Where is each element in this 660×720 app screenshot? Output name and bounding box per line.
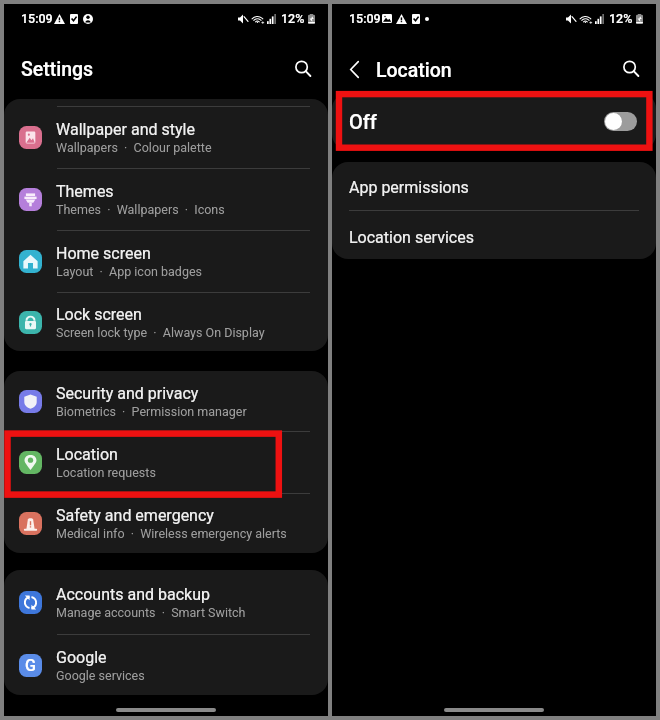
button[interactable]: Location services xyxy=(332,211,656,259)
staticText: Medical info · Wireless emergency alerts xyxy=(56,526,287,541)
staticText: Wallpapers · Colour palette xyxy=(56,140,212,155)
staticText: Themes xyxy=(56,182,114,201)
button[interactable]: Security and privacy xyxy=(4,371,328,431)
staticText: Wallpaper and style xyxy=(56,120,195,139)
staticText: Google xyxy=(56,648,107,667)
staticText: Safety and emergency xyxy=(56,506,214,525)
staticText: 12% xyxy=(281,11,305,26)
staticText: Home screen xyxy=(56,244,151,263)
button[interactable]: Search xyxy=(614,52,648,86)
staticText: Biometrics · Permission manager xyxy=(56,404,247,419)
staticText: Location requests xyxy=(56,465,156,480)
button[interactable]: G xyxy=(4,635,328,695)
button[interactable]: Off xyxy=(332,93,656,150)
staticText: Themes · Wallpapers · Icons xyxy=(56,202,225,217)
button[interactable]: Lock screen xyxy=(4,293,328,351)
button[interactable]: Home screen xyxy=(4,231,328,292)
staticText: Lock screen xyxy=(56,305,142,324)
staticText: App permissions xyxy=(349,178,469,197)
staticText: Layout · App icon badges xyxy=(56,264,203,279)
staticText: Off xyxy=(349,110,377,133)
staticText: 12% xyxy=(609,11,633,26)
button[interactable]: Safety and emergency xyxy=(4,494,328,553)
staticText: 15:09 xyxy=(349,11,381,26)
staticText: Security and privacy xyxy=(56,384,199,403)
staticText: Location services xyxy=(349,228,474,247)
button[interactable]: Location xyxy=(4,432,328,493)
staticText: Location xyxy=(376,59,452,82)
staticText: Location xyxy=(56,445,118,464)
button[interactable]: Back xyxy=(339,54,369,84)
button[interactable]: Wallpaper and style xyxy=(4,107,328,168)
staticText: G xyxy=(25,656,36,675)
staticText: 15:09 xyxy=(21,11,53,26)
button[interactable]: Location off toggle xyxy=(604,112,637,131)
staticText: Screen lock type · Always On Display xyxy=(56,325,265,340)
button[interactable]: Themes xyxy=(4,169,328,230)
button[interactable]: Search xyxy=(286,52,320,86)
button[interactable]: App permissions xyxy=(332,162,656,210)
staticText: Accounts and backup xyxy=(56,585,210,604)
staticText: Settings xyxy=(21,58,94,81)
staticText: Google services xyxy=(56,668,145,683)
button[interactable]: Accounts and backup xyxy=(4,570,328,634)
staticText: Manage accounts · Smart Switch xyxy=(56,605,246,620)
